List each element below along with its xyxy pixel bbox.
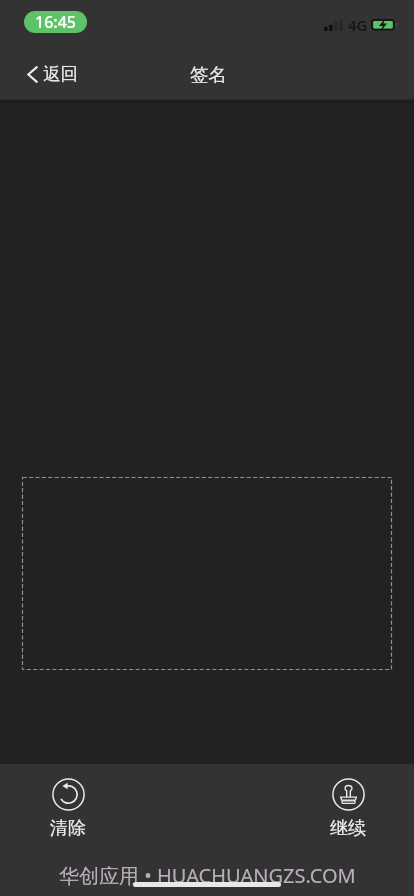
staticText: 华创应用 • HUACHUANGZS.COM	[59, 862, 356, 889]
button[interactable]: Continue	[316, 778, 380, 840]
other: Continue	[332, 778, 365, 811]
staticText: 4G	[348, 15, 368, 35]
button[interactable]: Clear	[36, 778, 100, 840]
other: Clear	[52, 778, 85, 811]
button[interactable]: 返回	[21, 59, 84, 89]
staticText: 继续	[330, 817, 366, 840]
staticText: 签名	[190, 63, 227, 86]
staticText: 清除	[50, 817, 86, 840]
staticText: 返回	[43, 63, 78, 85]
staticText: 16:45	[35, 11, 76, 33]
